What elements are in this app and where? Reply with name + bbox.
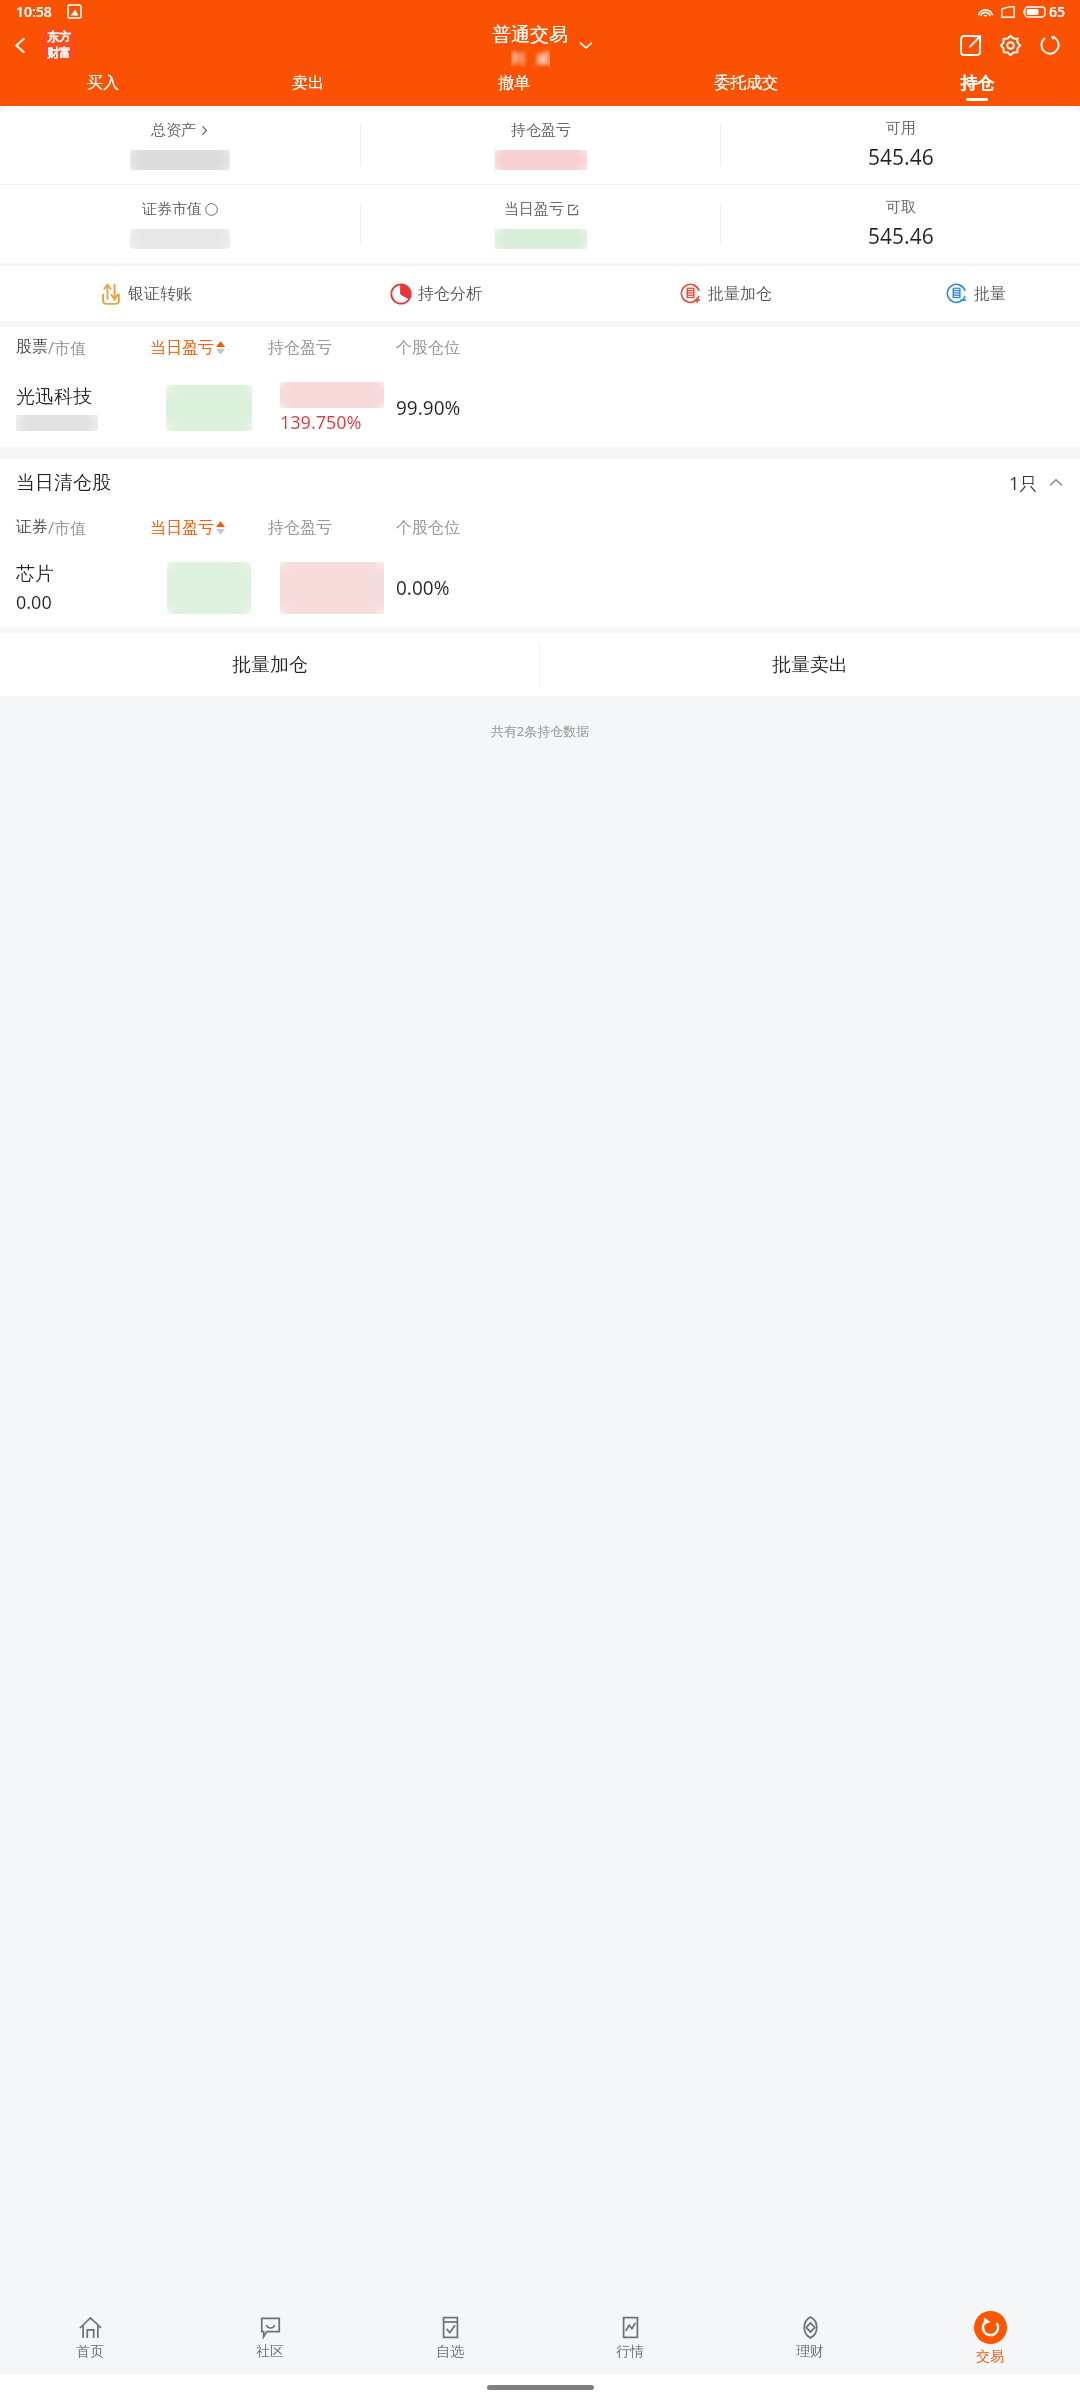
staticText: 持仓分析 [418, 284, 482, 304]
staticText: 社区 [256, 2343, 284, 2361]
button[interactable]: 理财 [720, 2302, 900, 2374]
button[interactable]: 持仓 [874, 67, 1080, 106]
button[interactable]: 东方财富 [41, 28, 76, 61]
button[interactable]: 首页 [0, 2302, 180, 2374]
staticText: 批量 [974, 284, 1006, 304]
staticText: 理财 [796, 2343, 824, 2361]
staticText: 撤单 [498, 73, 530, 93]
staticText: 持仓盈亏 [511, 121, 571, 140]
staticText: 刘 威 [511, 48, 550, 67]
staticText: 卖出 [292, 73, 324, 93]
staticText: 可取 [886, 198, 916, 217]
button[interactable]: 批量加仓 [581, 266, 871, 321]
button[interactable]: 卖出 [205, 67, 411, 106]
staticText: 个股仓位 [396, 518, 460, 538]
button[interactable]: 普通交易 [492, 23, 594, 67]
staticText: 持仓盈亏 [268, 338, 332, 358]
button[interactable]: 持仓盈亏 [361, 106, 720, 184]
button[interactable]: 撤单 [411, 67, 617, 106]
button[interactable]: 批量加仓 [0, 633, 539, 696]
staticText: 当日盈亏 [150, 518, 214, 538]
button[interactable]: 总资产 [0, 106, 360, 184]
staticText: 股票 [16, 337, 48, 357]
staticText: 银证转账 [128, 284, 192, 304]
staticText: 财富 [47, 45, 71, 60]
staticText: 普通交易 [492, 23, 568, 47]
button[interactable]: 设置 [990, 25, 1030, 65]
staticText: 首页 [76, 2343, 104, 2361]
button[interactable]: 社区 [180, 2302, 360, 2374]
staticText: 批量卖出 [772, 653, 848, 677]
button[interactable]: 当日盈亏 [361, 185, 720, 263]
staticText: 证券 [16, 517, 48, 537]
button[interactable]: 买入 [0, 67, 205, 106]
staticText: 买入 [87, 73, 119, 93]
button[interactable]: 行情 [540, 2302, 720, 2374]
staticText: 交易 [976, 2348, 1004, 2366]
staticText: 总资产 [151, 121, 196, 140]
button[interactable]: 刷新 [1030, 25, 1070, 65]
staticText: 光迅科技 [16, 385, 92, 409]
staticText: 0.00 [16, 590, 52, 615]
staticText: 共有2条持仓数据 [0, 722, 1080, 740]
staticText: 委托成交 [714, 73, 778, 93]
staticText: 0.00% [396, 575, 450, 601]
staticText: 持仓 [960, 73, 994, 94]
button[interactable]: 返回 [0, 25, 40, 65]
staticText: 证券市值 [142, 200, 202, 219]
button[interactable]: 分享 [950, 25, 990, 65]
staticText: 行情 [616, 2343, 644, 2361]
staticText: 批量加仓 [708, 284, 772, 304]
staticText: 当日清仓股 [16, 471, 111, 495]
staticText: /市值 [48, 517, 86, 539]
staticText: 139.750% [280, 410, 362, 435]
staticText: 批量加仓 [232, 653, 308, 677]
button[interactable]: 批量卖出 [540, 633, 1080, 696]
staticText: 10:58 [16, 2, 52, 21]
button[interactable]: 银证转账 [0, 266, 291, 321]
staticText: 个股仓位 [396, 338, 460, 358]
staticText: 芯片 [16, 562, 54, 586]
staticText: 当日盈亏 [150, 338, 214, 358]
button[interactable]: 委托成交 [617, 67, 874, 106]
staticText: 持仓盈亏 [268, 518, 332, 538]
button[interactable]: 持仓分析 [291, 266, 581, 321]
button[interactable]: 当日清仓股 [16, 459, 1064, 507]
button[interactable]: 证券市值 [0, 185, 360, 263]
staticText: 545.46 [868, 222, 934, 251]
button[interactable]: 自选 [360, 2302, 540, 2374]
staticText: 当日盈亏 [504, 200, 564, 219]
staticText: 可用 [886, 119, 916, 138]
button[interactable]: 交易 [900, 2302, 1080, 2374]
staticText: 65 [1049, 2, 1066, 21]
button[interactable]: 光迅科技 [0, 369, 1080, 447]
staticText: /市值 [48, 337, 86, 359]
staticText: 自选 [436, 2343, 464, 2361]
button[interactable]: 芯片 [0, 549, 1080, 627]
staticText: 99.90% [396, 395, 461, 421]
staticText: 545.46 [868, 143, 934, 172]
staticText: 1只 [1009, 471, 1038, 496]
staticText: 东方 [47, 29, 71, 44]
button[interactable]: 批量 [871, 266, 1080, 321]
